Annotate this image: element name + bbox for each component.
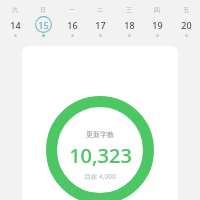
staticText: 二 bbox=[97, 6, 103, 14]
staticText: 10,323 bbox=[69, 142, 132, 169]
button[interactable]: 六 bbox=[1, 0, 29, 37]
other: Daily word count progress ring bbox=[22, 46, 178, 200]
staticText: 目标 4,000 bbox=[84, 172, 116, 181]
staticText: 18 bbox=[124, 19, 135, 31]
staticText: 一 bbox=[69, 6, 75, 14]
staticText: 16 bbox=[67, 19, 78, 31]
button[interactable]: 二 bbox=[86, 0, 114, 37]
staticText: 14 bbox=[10, 19, 21, 31]
staticText: 四 bbox=[154, 6, 160, 14]
staticText: 日 bbox=[40, 6, 46, 14]
button[interactable]: 四 bbox=[143, 0, 171, 37]
button[interactable]: 日 bbox=[29, 0, 57, 37]
staticText: 19 bbox=[152, 19, 163, 31]
button[interactable]: 一 bbox=[58, 0, 86, 37]
button[interactable]: Daily word count progress ring bbox=[22, 46, 178, 200]
staticText: 20 bbox=[181, 19, 192, 31]
staticText: 五 bbox=[183, 6, 189, 14]
staticText: 17 bbox=[95, 19, 106, 31]
staticText: 15 bbox=[38, 19, 49, 31]
button[interactable]: 五 bbox=[172, 0, 200, 37]
button[interactable]: 三 bbox=[115, 0, 143, 37]
staticText: 更新字数 bbox=[86, 130, 114, 139]
staticText: 三 bbox=[126, 6, 132, 14]
staticText: 六 bbox=[12, 6, 18, 14]
